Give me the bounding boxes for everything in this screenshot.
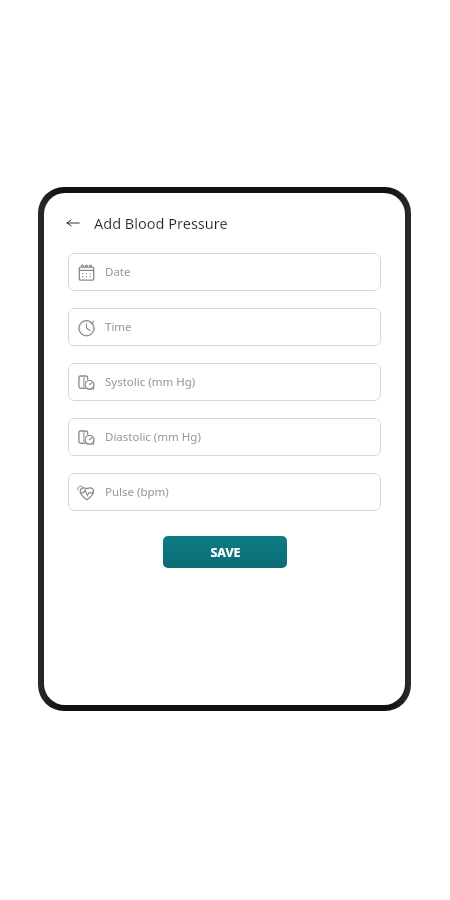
- staticText: Date: [105, 264, 131, 280]
- staticText: Diastolic (mm Hg): [105, 429, 201, 445]
- button[interactable]: Diastolic (mm Hg): [68, 418, 381, 456]
- button[interactable]: Systolic (mm Hg): [68, 363, 381, 401]
- button[interactable]: Date: [68, 253, 381, 291]
- staticText: Add Blood Pressure: [94, 213, 228, 233]
- staticText: SAVE: [210, 544, 241, 561]
- staticText: Time: [105, 319, 132, 335]
- button[interactable]: Time: [68, 308, 381, 346]
- button[interactable]: Pulse (bpm): [68, 473, 381, 511]
- staticText: Pulse (bpm): [105, 484, 169, 500]
- staticText: Systolic (mm Hg): [105, 374, 196, 390]
- button[interactable]: SAVE: [163, 536, 287, 568]
- button[interactable]: Back: [62, 212, 84, 234]
